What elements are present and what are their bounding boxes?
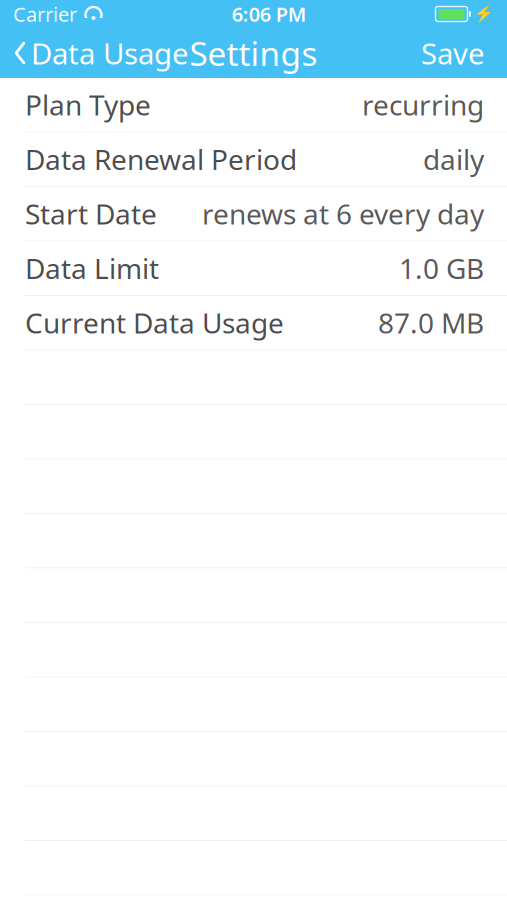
button[interactable]: Current Data Usage xyxy=(0,296,507,350)
staticText: Data Limit xyxy=(25,250,159,287)
button[interactable]: Plan Type xyxy=(0,78,507,132)
staticText: renews at 6 every day xyxy=(202,195,484,232)
button[interactable]: Start Date xyxy=(0,187,507,241)
staticText: Current Data Usage xyxy=(25,304,284,341)
staticText: Carrier xyxy=(13,1,77,27)
staticText: 1.0 GB xyxy=(399,250,484,287)
button[interactable]: Save xyxy=(407,28,507,78)
staticText: Save xyxy=(421,33,485,72)
staticText: daily xyxy=(423,141,484,178)
staticText: Plan Type xyxy=(25,86,151,123)
staticText: ⚡ xyxy=(474,5,494,23)
button[interactable]: Data Usage xyxy=(0,28,199,78)
staticText: 87.0 MB xyxy=(378,304,484,341)
staticText: Settings xyxy=(189,31,317,75)
staticText: Data Renewal Period xyxy=(25,141,297,178)
staticText: 6:06 PM xyxy=(232,1,307,27)
button[interactable]: Data Limit xyxy=(0,241,507,296)
staticText: Start Date xyxy=(25,195,157,232)
staticText: Data Usage xyxy=(31,33,189,72)
staticText: recurring xyxy=(362,86,484,123)
button[interactable]: Data Renewal Period xyxy=(0,132,507,187)
